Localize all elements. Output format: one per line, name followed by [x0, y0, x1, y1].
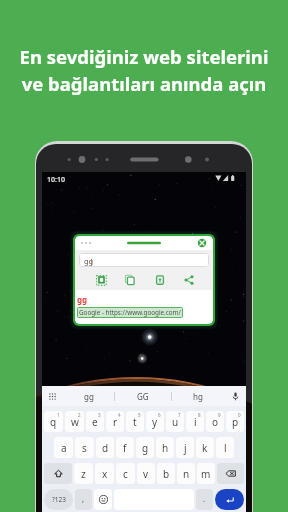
staticText: q — [50, 415, 57, 429]
staticText: d — [102, 441, 109, 455]
staticText: Google - https://www.google.com/ — [79, 308, 181, 317]
button[interactable]: Enter — [215, 489, 244, 510]
button[interactable]: h — [156, 437, 174, 458]
staticText: t — [133, 415, 137, 429]
staticText: c — [123, 467, 128, 481]
button[interactable]: d — [96, 437, 114, 458]
other: Clipboard options — [49, 393, 56, 400]
staticText: k — [202, 441, 208, 455]
button[interactable]: . — [196, 489, 213, 510]
staticText: gg — [84, 391, 94, 402]
staticText: ?123 — [52, 495, 66, 504]
staticText: v — [143, 467, 149, 481]
button[interactable]: s — [75, 437, 94, 458]
staticText: 8 — [198, 412, 201, 418]
staticText: m — [201, 467, 211, 481]
staticText: 1 — [57, 412, 60, 418]
other: Copy — [125, 275, 135, 285]
staticText: 2 — [78, 412, 81, 418]
staticText: w — [71, 415, 79, 429]
staticText: u — [172, 415, 179, 429]
other: Voice input — [231, 392, 240, 401]
staticText: i — [194, 415, 197, 429]
staticText: l — [224, 441, 227, 455]
button[interactable]: g — [136, 437, 154, 458]
staticText: n — [183, 467, 190, 481]
button[interactable]: , — [75, 489, 92, 510]
button[interactable]: ?123 — [44, 489, 73, 510]
staticText: . — [203, 493, 206, 504]
staticText: 4 — [118, 412, 121, 418]
button[interactable]: t — [126, 411, 144, 432]
button[interactable]: x — [95, 463, 114, 484]
staticText: a — [61, 441, 67, 455]
staticText: h — [162, 441, 169, 455]
staticText: e — [92, 415, 98, 429]
button[interactable]: Select all — [94, 273, 108, 287]
staticText: r — [113, 415, 118, 429]
staticText: 0 — [238, 412, 241, 418]
button[interactable]: r — [106, 411, 124, 432]
staticText: 3 — [98, 412, 101, 418]
staticText: hg — [193, 391, 203, 402]
button[interactable]: l — [216, 437, 234, 458]
button[interactable]: Backspace — [217, 463, 244, 484]
staticText: GG — [137, 391, 149, 402]
staticText: 10:10 — [47, 175, 65, 185]
staticText: x — [102, 467, 108, 481]
button[interactable]: gg — [79, 253, 209, 267]
button[interactable]: u — [166, 411, 184, 432]
staticText: z — [81, 467, 86, 481]
staticText: 7 — [178, 412, 181, 418]
button[interactable]: Clipboard options — [42, 386, 63, 406]
button[interactable]: gg — [63, 386, 114, 406]
button[interactable]: z — [74, 463, 93, 484]
button[interactable]: Share — [182, 273, 196, 287]
button[interactable]: b — [157, 463, 175, 484]
button[interactable]: p — [226, 411, 244, 432]
staticText: gg — [77, 294, 88, 305]
staticText: y — [152, 415, 158, 429]
other: Paste — [155, 275, 165, 285]
button[interactable]: j — [176, 437, 194, 458]
staticText: g — [142, 441, 149, 455]
other: Share — [184, 275, 194, 285]
button[interactable]: w — [65, 411, 84, 432]
staticText: 5 — [138, 412, 141, 418]
button[interactable]: Copy — [123, 273, 137, 287]
button[interactable]: k — [196, 437, 214, 458]
button[interactable]: Google - https://www.google.com/ — [79, 308, 181, 317]
staticText: p — [232, 415, 239, 429]
button[interactable]: o — [206, 411, 224, 432]
staticText: , — [82, 493, 85, 504]
staticText: f — [123, 441, 127, 455]
staticText: s — [82, 441, 87, 455]
button[interactable]: Voice input — [224, 386, 246, 406]
staticText: j — [184, 441, 187, 455]
button[interactable]: Paste — [153, 273, 167, 287]
button[interactable]: f — [116, 437, 134, 458]
button[interactable]: Emoji — [94, 489, 112, 510]
staticText: 9 — [218, 412, 221, 418]
button[interactable]: c — [116, 463, 135, 484]
button[interactable]: hg — [172, 386, 224, 406]
staticText: gg — [84, 256, 94, 266]
other: Select all — [96, 275, 107, 286]
button[interactable]: q — [44, 411, 63, 432]
staticText: 6 — [158, 412, 161, 418]
button[interactable]: n — [177, 463, 195, 484]
button[interactable]: y — [146, 411, 164, 432]
button[interactable]: v — [137, 463, 155, 484]
button[interactable]: i — [186, 411, 204, 432]
button[interactable]: GG — [115, 386, 171, 406]
staticText: o — [212, 415, 219, 429]
button[interactable]: a — [54, 437, 73, 458]
button[interactable]: Shift — [44, 463, 72, 484]
button[interactable]: e — [86, 411, 104, 432]
staticText: En sevdiğiniz web sitelerini ve bağlantı… — [0, 44, 288, 97]
staticText: b — [163, 467, 170, 481]
button[interactable]: m — [197, 463, 215, 484]
